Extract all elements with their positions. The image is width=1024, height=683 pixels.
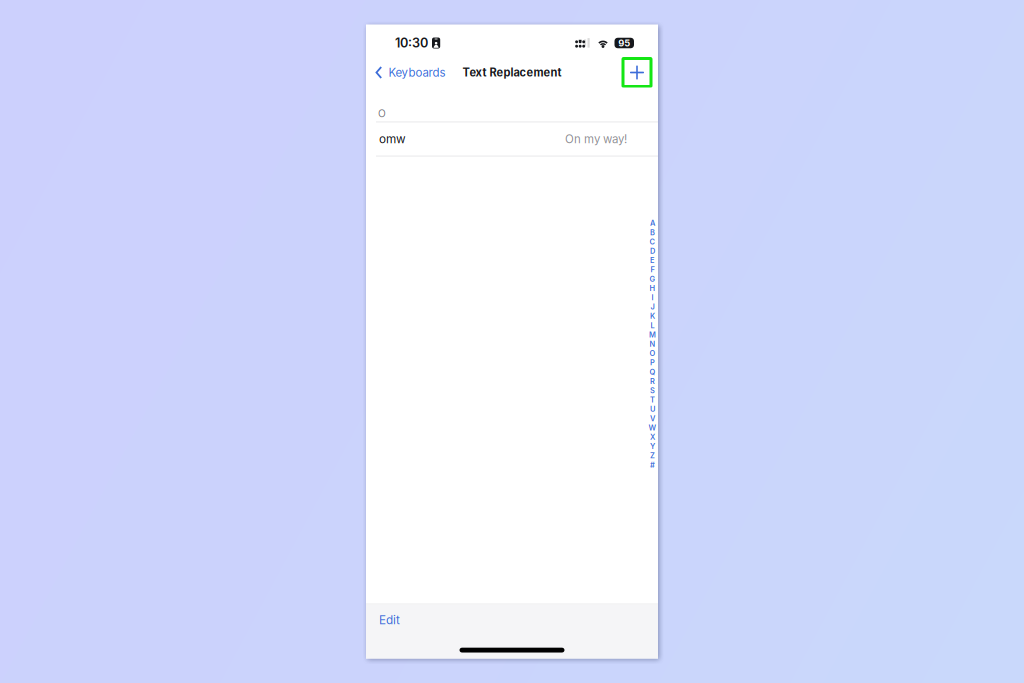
staticText: X <box>650 432 655 441</box>
staticText: On my way! <box>565 132 627 146</box>
staticText: A <box>650 219 655 228</box>
staticText: M <box>649 330 656 339</box>
staticText: O <box>378 107 386 120</box>
staticText: U <box>650 405 655 414</box>
staticText: H <box>649 284 655 293</box>
staticText: Text Replacement <box>462 66 561 79</box>
staticText: Z <box>650 451 655 460</box>
staticText: P <box>650 358 655 367</box>
staticText: J <box>650 302 654 311</box>
button[interactable]: Section index <box>647 218 658 470</box>
staticText: C <box>649 237 655 246</box>
staticText: # <box>650 460 655 469</box>
staticText: N <box>649 339 655 348</box>
staticText: B <box>650 228 655 237</box>
staticText: W <box>648 423 656 432</box>
staticText: 10:30 <box>395 35 428 51</box>
staticText: G <box>649 274 655 283</box>
staticText: L <box>650 321 654 330</box>
staticText: S <box>650 386 655 395</box>
staticText: V <box>650 414 655 423</box>
staticText: Q <box>649 367 655 376</box>
button[interactable]: Add text replacement <box>626 61 648 83</box>
staticText: F <box>650 265 654 274</box>
staticText: D <box>650 246 655 255</box>
staticText: Edit <box>379 613 400 627</box>
button[interactable]: omw <box>366 122 658 156</box>
staticText: K <box>650 312 655 321</box>
staticText: E <box>650 256 655 265</box>
staticText: Keyboards <box>388 66 445 79</box>
staticText: T <box>650 395 655 404</box>
staticText: R <box>650 377 655 386</box>
button[interactable]: Keyboards <box>375 61 445 84</box>
staticText: I <box>651 293 653 302</box>
staticText: 95 <box>618 37 630 49</box>
button[interactable]: Edit <box>366 604 414 636</box>
staticText: Y <box>650 442 655 451</box>
staticText: omw <box>379 132 406 146</box>
staticText: O <box>649 349 655 358</box>
